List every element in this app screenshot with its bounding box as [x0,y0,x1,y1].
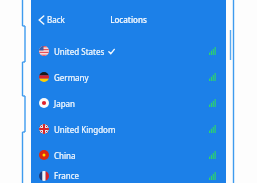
button[interactable]: France [31,168,226,183]
button[interactable]: United States [31,38,226,64]
staticText: Locations [110,14,147,25]
other: Signal strength [209,151,218,159]
staticText: Japan [54,98,76,109]
button[interactable]: Japan [31,90,226,116]
button[interactable]: United Kingdom [31,116,226,142]
other: Signal strength [209,47,218,55]
staticText: Back [47,14,65,25]
staticText: United States [54,46,105,57]
button[interactable]: Back [36,12,67,27]
button[interactable]: Germany [31,64,226,90]
staticText: Germany [54,72,89,83]
staticText: United Kingdom [54,124,116,135]
other: Signal strength [209,125,218,133]
staticText: France [54,170,80,181]
button[interactable]: China [31,142,226,168]
other: Signal strength [209,99,218,107]
other: Signal strength [209,73,218,81]
other: Signal strength [209,172,218,180]
staticText: China [54,150,76,161]
